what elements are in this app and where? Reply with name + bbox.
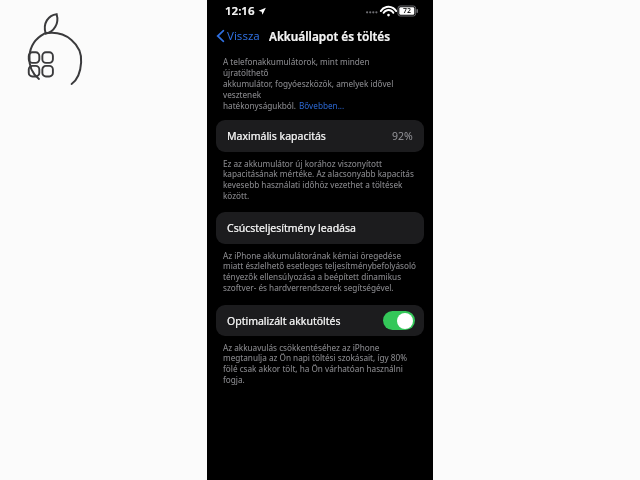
staticText: A telefonakkumulátorok, mint minden újra… [223, 56, 417, 78]
staticText: Csúcsteljesítmény leadása [227, 221, 356, 235]
staticText: Vissza [227, 28, 260, 44]
staticText: Ez az akkumulátor új korához viszonyítot… [223, 158, 417, 202]
button[interactable]: Optimalizált akkutöltés [216, 305, 424, 336]
button[interactable]: Maximális kapacitás [216, 120, 424, 152]
staticText: Akkuállapot és töltés [269, 28, 391, 44]
staticText: Maximális kapacitás [227, 129, 326, 143]
staticText: Bővebben... [299, 100, 345, 111]
staticText: hatékonyságukból. [223, 100, 299, 111]
staticText: akkumulátor, fogyóeszközök, amelyek időv… [223, 78, 417, 100]
staticText: 92% [392, 129, 413, 143]
staticText: Optimalizált akkutöltés [227, 314, 341, 328]
staticText: Az akkuavulás csökkentéséhez az iPhone m… [223, 342, 417, 386]
staticText: 72 [403, 6, 412, 16]
button[interactable]: Bővebben... [299, 100, 345, 111]
button[interactable]: Vissza [215, 26, 262, 46]
other: Logó [24, 12, 92, 84]
button[interactable]: Csúcsteljesítmény leadása [216, 212, 424, 244]
staticText: Az iPhone akkumulátorának kémiai öregedé… [223, 250, 417, 294]
button[interactable]: Optimalizált akkutöltés kapcsoló [383, 311, 415, 330]
staticText: 12:16 [225, 3, 255, 19]
